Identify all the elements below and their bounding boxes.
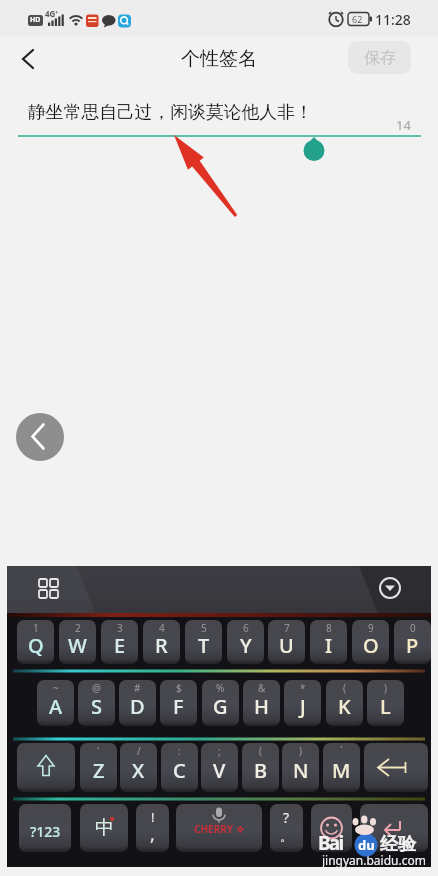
- staticText: 62: [352, 13, 363, 25]
- staticText: Bai: [318, 830, 343, 856]
- staticText: Q: [28, 632, 44, 659]
- staticText: S: [91, 693, 102, 720]
- staticText: 中: [95, 816, 114, 840]
- staticText: /: [137, 744, 141, 758]
- staticText: 4G⁺: [45, 8, 59, 19]
- button[interactable]: 0: [394, 620, 431, 664]
- button[interactable]: [16, 413, 64, 461]
- button[interactable]: 8: [310, 620, 347, 664]
- staticText: ): [299, 744, 302, 758]
- staticText: C: [173, 757, 186, 784]
- button[interactable]: 5: [185, 620, 222, 664]
- button[interactable]: &: [243, 680, 280, 726]
- button[interactable]: ): [282, 743, 319, 792]
- staticText: &: [258, 681, 266, 695]
- staticText: ;: [218, 744, 221, 758]
- staticText: 9: [368, 621, 374, 635]
- staticText: (: [343, 681, 346, 695]
- staticText: CHERRY ❖: [194, 822, 245, 836]
- staticText: M: [332, 757, 351, 784]
- staticText: jingyan.baidu.com: [322, 852, 426, 868]
- staticText: 7: [284, 621, 290, 635]
- staticText: ?123: [30, 822, 61, 841]
- button[interactable]: [311, 804, 352, 852]
- button[interactable]: ': [80, 743, 117, 792]
- staticText: 。: [280, 828, 293, 844]
- button[interactable]: [12, 45, 44, 73]
- button[interactable]: $: [160, 680, 197, 726]
- staticText: !: [151, 808, 155, 826]
- staticText: (: [259, 744, 262, 758]
- staticText: L: [380, 693, 391, 720]
- button[interactable]: :: [161, 743, 198, 792]
- staticText: %: [216, 681, 225, 695]
- button[interactable]: (: [326, 680, 363, 726]
- staticText: 11:28: [375, 10, 411, 29]
- button[interactable]: ): [367, 680, 404, 726]
- staticText: R: [155, 632, 168, 659]
- staticText: W: [68, 632, 87, 659]
- button[interactable]: %: [202, 680, 239, 726]
- button[interactable]: `: [323, 743, 360, 792]
- button[interactable]: #: [119, 680, 156, 726]
- button[interactable]: 4: [143, 620, 180, 664]
- button[interactable]: 7: [268, 620, 305, 664]
- staticText: 6: [243, 621, 249, 635]
- button[interactable]: 1: [17, 620, 54, 664]
- staticText: E: [114, 632, 126, 659]
- staticText: ?: [283, 808, 290, 827]
- button[interactable]: [17, 743, 75, 792]
- button[interactable]: 6: [227, 620, 264, 664]
- button[interactable]: /: [120, 743, 157, 792]
- staticText: F: [173, 693, 184, 720]
- staticText: J: [300, 693, 306, 720]
- staticText: H: [254, 693, 269, 720]
- button[interactable]: ?: [270, 804, 303, 852]
- staticText: 0: [410, 621, 416, 635]
- button[interactable]: 中: [80, 804, 128, 852]
- button[interactable]: @: [78, 680, 115, 726]
- button[interactable]: 3: [101, 620, 138, 664]
- button[interactable]: 保存: [348, 41, 411, 74]
- staticText: D: [130, 693, 145, 720]
- staticText: $: [176, 681, 182, 695]
- button[interactable]: 9: [352, 620, 389, 664]
- staticText: T: [198, 632, 210, 659]
- staticText: 5: [201, 621, 207, 635]
- staticText: ': [97, 744, 100, 758]
- staticText: *: [300, 681, 306, 695]
- staticText: P: [406, 632, 419, 659]
- button[interactable]: CHERRY ❖: [176, 804, 262, 852]
- staticText: 8: [326, 621, 332, 635]
- button[interactable]: [364, 743, 428, 792]
- staticText: X: [132, 757, 145, 784]
- staticText: 1: [33, 621, 39, 635]
- staticText: G: [213, 693, 228, 720]
- button[interactable]: (: [242, 743, 279, 792]
- staticText: O: [363, 632, 379, 659]
- button[interactable]: !: [136, 804, 169, 852]
- staticText: A: [49, 693, 63, 720]
- staticText: 3: [117, 621, 123, 635]
- staticText: @: [92, 681, 101, 695]
- button[interactable]: ?123: [19, 804, 71, 852]
- staticText: Y: [240, 632, 252, 659]
- button[interactable]: ;: [201, 743, 238, 792]
- staticText: B: [254, 757, 268, 784]
- staticText: ): [384, 681, 387, 695]
- staticText: N: [293, 757, 309, 784]
- staticText: V: [213, 757, 226, 784]
- staticText: 保存: [364, 48, 396, 68]
- staticText: 2: [75, 621, 81, 635]
- staticText: ~: [53, 681, 59, 695]
- button[interactable]: ~: [37, 680, 74, 726]
- staticText: 14: [396, 116, 411, 134]
- button[interactable]: [360, 804, 428, 852]
- staticText: 经验: [380, 833, 416, 856]
- button[interactable]: *: [284, 680, 321, 726]
- staticText: 4: [159, 621, 165, 635]
- staticText: K: [338, 693, 351, 720]
- staticText: I: [325, 632, 333, 659]
- staticText: U: [279, 632, 294, 659]
- button[interactable]: 2: [59, 620, 96, 664]
